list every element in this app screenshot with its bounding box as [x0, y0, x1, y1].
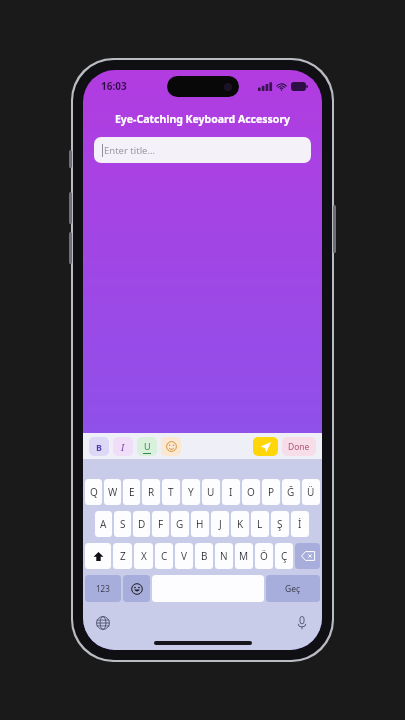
- button[interactable]: A: [95, 511, 112, 537]
- staticText: Ğ: [287, 485, 295, 499]
- staticText: I: [121, 441, 125, 453]
- staticText: R: [148, 485, 155, 499]
- button[interactable]: I: [113, 437, 133, 456]
- staticText: S: [120, 517, 126, 531]
- staticText: N: [220, 549, 228, 563]
- button[interactable]: O: [242, 479, 260, 505]
- button[interactable]: Insert emoji: [161, 437, 181, 456]
- staticText: Ç: [281, 549, 288, 563]
- button[interactable]: İ: [291, 511, 309, 537]
- staticText: K: [237, 517, 244, 531]
- staticText: 123: [96, 583, 110, 594]
- button[interactable]: F: [152, 511, 169, 537]
- button[interactable]: J: [211, 511, 229, 537]
- staticText: V: [181, 549, 187, 563]
- staticText: P: [268, 485, 275, 499]
- staticText: W: [108, 485, 118, 499]
- button[interactable]: Ğ: [282, 479, 300, 505]
- staticText: Ö: [260, 549, 268, 563]
- staticText: Geç: [285, 583, 301, 595]
- staticText: G: [176, 517, 184, 531]
- staticText: Ü: [307, 485, 315, 499]
- button[interactable]: Enter title...: [94, 137, 311, 163]
- button[interactable]: M: [235, 543, 253, 569]
- staticText: E: [129, 485, 135, 499]
- staticText: U: [207, 485, 215, 499]
- button[interactable]: B: [195, 543, 213, 569]
- button[interactable]: C: [155, 543, 173, 569]
- staticText: D: [138, 517, 146, 531]
- button[interactable]: Y: [182, 479, 200, 505]
- button[interactable]: G: [171, 511, 189, 537]
- staticText: A: [100, 517, 107, 531]
- staticText: L: [257, 517, 263, 531]
- staticText: O: [247, 485, 255, 499]
- staticText: Q: [90, 485, 98, 499]
- button[interactable]: K: [231, 511, 249, 537]
- button[interactable]: Done: [282, 437, 316, 456]
- button[interactable]: I: [222, 479, 240, 505]
- staticText: I: [229, 485, 233, 499]
- button[interactable]: 123: [85, 575, 121, 602]
- button[interactable]: H: [191, 511, 209, 537]
- button[interactable]: Backspace: [295, 543, 320, 569]
- staticText: Enter title...: [104, 144, 156, 157]
- staticText: B: [201, 549, 208, 563]
- button[interactable]: Change keyboard language: [93, 613, 113, 633]
- button[interactable]: X: [134, 543, 153, 569]
- staticText: 16:03: [101, 79, 127, 93]
- staticText: J: [219, 517, 222, 531]
- button[interactable]: Geç: [266, 575, 320, 602]
- button[interactable]: Ş: [271, 511, 289, 537]
- staticText: İ: [298, 517, 302, 531]
- staticText: U: [144, 440, 151, 452]
- button[interactable]: P: [262, 479, 280, 505]
- button[interactable]: L: [251, 511, 269, 537]
- staticText: Eye-Catching Keyboard Accessory: [83, 112, 322, 126]
- button[interactable]: U: [202, 479, 220, 505]
- button[interactable]: E: [123, 479, 140, 505]
- button[interactable]: Ç: [275, 543, 293, 569]
- staticText: M: [239, 549, 249, 563]
- staticText: F: [158, 517, 164, 531]
- staticText: H: [196, 517, 204, 531]
- staticText: Y: [188, 485, 194, 499]
- button[interactable]: W: [104, 479, 121, 505]
- button[interactable]: U: [137, 437, 157, 456]
- button[interactable]: Shift: [85, 543, 111, 569]
- button[interactable]: Ü: [302, 479, 320, 505]
- button[interactable]: Ö: [255, 543, 273, 569]
- button[interactable]: Dictate: [292, 613, 312, 633]
- staticText: Ş: [277, 517, 283, 531]
- button[interactable]: B: [89, 437, 109, 456]
- staticText: C: [161, 549, 168, 563]
- button[interactable]: Emoji keyboard: [123, 575, 150, 602]
- staticText: Done: [288, 441, 310, 453]
- staticText: T: [168, 485, 174, 499]
- button[interactable]: D: [133, 511, 150, 537]
- button[interactable]: N: [215, 543, 233, 569]
- button[interactable]: S: [114, 511, 131, 537]
- button[interactable]: T: [162, 479, 180, 505]
- button[interactable]: V: [175, 543, 193, 569]
- staticText: B: [96, 441, 102, 453]
- staticText: Z: [120, 549, 126, 563]
- button[interactable]: R: [142, 479, 160, 505]
- button[interactable]: Q: [85, 479, 102, 505]
- button[interactable]: Send: [253, 437, 278, 456]
- button[interactable]: Z: [113, 543, 132, 569]
- staticText: X: [141, 549, 147, 563]
